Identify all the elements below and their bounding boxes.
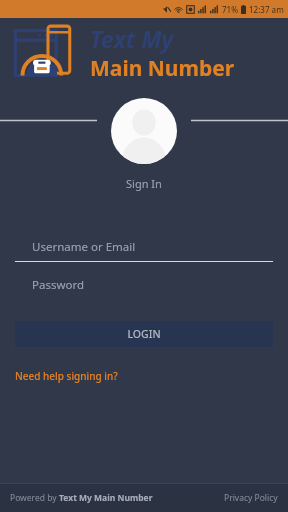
staticText: Sign In bbox=[126, 176, 162, 191]
button[interactable]: Password bbox=[15, 271, 273, 299]
staticText: 71% bbox=[222, 4, 238, 15]
button[interactable]: Need help signing in? bbox=[15, 369, 118, 383]
staticText: Privacy Policy bbox=[224, 492, 278, 504]
staticText: LOGIN bbox=[127, 327, 161, 341]
button[interactable]: Privacy Policy bbox=[224, 492, 278, 504]
staticText: Powered by bbox=[10, 492, 59, 504]
staticText: 12:37 am bbox=[249, 4, 284, 15]
staticText: Need help signing in? bbox=[15, 369, 118, 383]
button[interactable]: Powered by bbox=[10, 492, 153, 504]
staticText: Password bbox=[32, 277, 85, 293]
button[interactable]: Profile photo bbox=[111, 98, 177, 164]
staticText: Main Number bbox=[90, 54, 235, 83]
staticText: Text My Main Number bbox=[59, 492, 153, 504]
button[interactable]: LOGIN bbox=[15, 321, 273, 347]
staticText: Text My bbox=[90, 23, 174, 54]
button[interactable]: Username or Email bbox=[15, 233, 273, 261]
staticText: Username or Email bbox=[32, 239, 136, 255]
